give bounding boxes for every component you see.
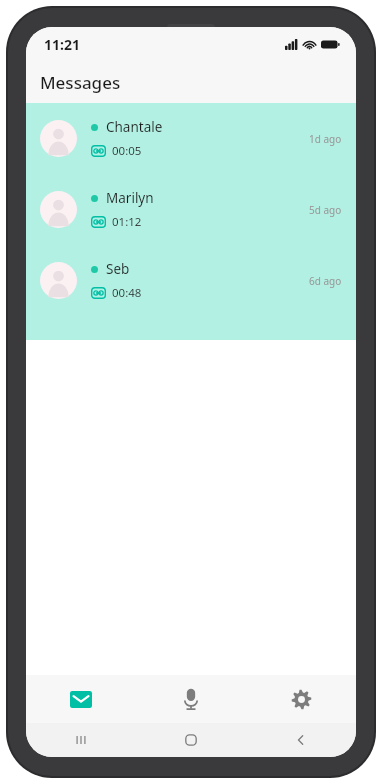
button[interactable]: Settings — [246, 675, 356, 723]
staticText: Seb — [106, 260, 130, 278]
button[interactable]: Messages — [26, 675, 136, 723]
button[interactable]: Seb — [26, 245, 356, 316]
staticText: 00:48 — [112, 285, 142, 301]
button[interactable]: Record voicemail — [136, 675, 246, 723]
staticText: 01:12 — [112, 214, 142, 230]
staticText: 1d ago — [309, 132, 342, 146]
button[interactable]: Home — [136, 723, 246, 757]
button[interactable]: Chantale — [26, 103, 356, 174]
staticText: 00:05 — [112, 143, 142, 159]
staticText: Chantale — [106, 118, 163, 136]
button[interactable]: Back — [246, 723, 356, 757]
button[interactable]: Recent apps — [26, 723, 136, 757]
button[interactable]: Marilyn — [26, 174, 356, 245]
staticText: 6d ago — [309, 274, 342, 288]
staticText: 5d ago — [309, 203, 342, 217]
staticText: 11:21 — [44, 35, 80, 54]
staticText: Messages — [40, 71, 121, 94]
staticText: Marilyn — [106, 189, 154, 207]
